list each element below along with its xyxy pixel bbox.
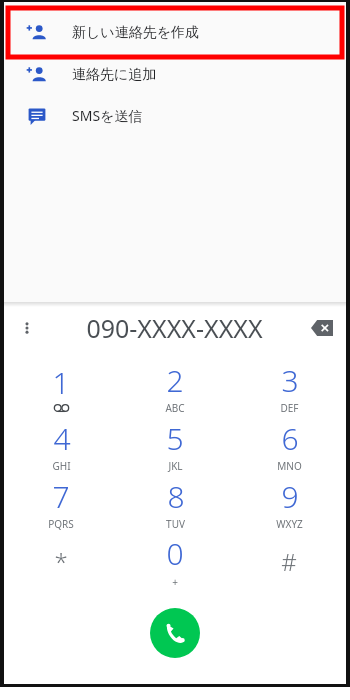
button[interactable]: 新しい連絡先を作成 xyxy=(4,12,346,53)
staticText: WXYZ xyxy=(276,517,303,531)
staticText: TUV xyxy=(166,517,185,531)
staticText: JKL xyxy=(168,459,183,473)
button[interactable]: 連絡先に追加 xyxy=(4,54,346,95)
staticText: 8 xyxy=(167,476,185,517)
button[interactable]: 7 xyxy=(4,474,118,532)
staticText: 1 xyxy=(52,362,70,403)
button[interactable]: SMSを送信 xyxy=(4,95,346,136)
staticText: 連絡先に追加 xyxy=(72,66,157,84)
button[interactable]: # xyxy=(232,532,346,590)
button[interactable]: 0 xyxy=(118,532,232,590)
button[interactable]: Call xyxy=(150,608,200,658)
button[interactable]: 8 xyxy=(118,474,232,532)
button[interactable]: * xyxy=(4,532,118,590)
button[interactable]: 9 xyxy=(232,474,346,532)
staticText: PQRS xyxy=(48,517,74,531)
staticText: 7 xyxy=(52,476,70,517)
button[interactable]: 3 xyxy=(232,358,346,416)
button[interactable]: 4 xyxy=(4,416,118,474)
staticText: 5 xyxy=(166,418,184,459)
staticText: ABC xyxy=(165,401,185,415)
staticText: GHI xyxy=(52,459,71,473)
staticText: 090-XXXX-XXXX xyxy=(86,311,263,345)
staticText: MNO xyxy=(277,459,302,473)
button[interactable]: Backspace xyxy=(298,306,346,350)
staticText: 3 xyxy=(281,360,299,401)
staticText: 2 xyxy=(166,360,184,401)
button[interactable]: 1 xyxy=(4,358,118,416)
staticText: * xyxy=(54,545,68,578)
staticText: 4 xyxy=(53,418,71,459)
staticText: 6 xyxy=(281,418,299,459)
staticText: 新しい連絡先を作成 xyxy=(72,24,199,42)
staticText: 9 xyxy=(281,476,299,517)
staticText: SMSを送信 xyxy=(72,106,143,125)
button[interactable]: 5 xyxy=(118,416,232,474)
staticText: # xyxy=(281,545,297,578)
staticText: + xyxy=(172,575,178,589)
button[interactable]: More options xyxy=(4,306,50,350)
staticText: DEF xyxy=(280,401,299,415)
button[interactable]: 2 xyxy=(118,358,232,416)
button[interactable]: 6 xyxy=(232,416,346,474)
staticText: 0 xyxy=(166,533,184,574)
